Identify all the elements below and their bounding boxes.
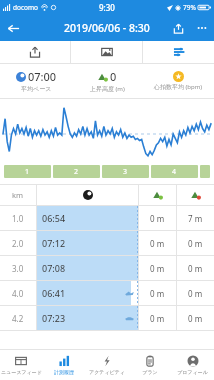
button[interactable]: 心拍数平均 (bpm) xyxy=(143,64,214,98)
button[interactable]: 計測履歴 xyxy=(42,350,85,380)
button[interactable]: 2.0 xyxy=(0,231,214,255)
staticText: 2019/06/06 - 8:30 xyxy=(64,21,150,35)
staticText: 1 xyxy=(25,167,30,177)
button[interactable]: 3.0 xyxy=(0,256,214,280)
staticText: 0 m xyxy=(188,288,203,299)
button[interactable]: Splits xyxy=(143,41,214,63)
staticText: 1.0 xyxy=(12,213,24,224)
button[interactable]: 1.0 xyxy=(0,206,214,230)
staticText: 9:30 xyxy=(99,2,115,13)
staticText: 0 m xyxy=(150,313,165,324)
staticText: 平均ペース xyxy=(21,85,52,93)
button[interactable]: Export xyxy=(0,41,70,63)
staticText: 07:00 xyxy=(28,69,57,84)
button[interactable]: 07:00 xyxy=(0,64,72,98)
staticText: 7 m xyxy=(188,213,203,224)
staticText: ニュースフィード xyxy=(1,369,42,375)
staticText: 0 m xyxy=(188,313,203,324)
staticText: 07:12 xyxy=(42,237,66,249)
button[interactable]: ニュースフィード xyxy=(0,350,42,380)
staticText: 0 m xyxy=(188,263,203,274)
staticText: 07:23 xyxy=(42,312,66,324)
staticText: プラン xyxy=(142,369,158,375)
staticText: アクティビティ xyxy=(89,369,125,375)
staticText: 2.0 xyxy=(12,238,24,249)
staticText: 06:41 xyxy=(42,287,66,299)
staticText: 07:08 xyxy=(42,262,66,274)
staticText: 4 xyxy=(172,167,177,177)
staticText: 0 m xyxy=(150,213,165,224)
staticText: 2 xyxy=(74,167,79,177)
staticText: 0 m xyxy=(188,238,203,249)
staticText: 0 m xyxy=(150,263,165,274)
staticText: 0 m xyxy=(150,288,165,299)
staticText: km xyxy=(12,190,24,200)
button[interactable]: Share xyxy=(166,16,190,40)
button[interactable]: Back xyxy=(0,15,26,41)
staticText: 心拍数平均 (bpm) xyxy=(154,83,203,91)
staticText: 79% xyxy=(183,3,196,12)
button[interactable]: Map xyxy=(71,41,142,63)
button[interactable]: 4.0 xyxy=(0,281,214,305)
button[interactable]: プラン xyxy=(128,350,171,380)
button[interactable]: アクティビティ xyxy=(85,350,128,380)
staticText: 0 xyxy=(110,69,117,84)
staticText: 上昇高度 (m) xyxy=(90,85,125,93)
staticText: 06:54 xyxy=(42,212,66,224)
staticText: 3.0 xyxy=(12,263,24,274)
button[interactable]: 0 xyxy=(72,64,143,98)
button[interactable]: 4.2 xyxy=(0,306,214,330)
staticText: docomo xyxy=(13,3,38,12)
staticText: 計測履歴 xyxy=(54,369,74,375)
button[interactable]: プロフィール xyxy=(171,350,214,380)
staticText: 4.0 xyxy=(12,288,24,299)
staticText: 0 m xyxy=(150,238,165,249)
button[interactable]: More options xyxy=(190,16,214,40)
staticText: 3 xyxy=(123,167,128,177)
staticText: 4.2 xyxy=(12,313,24,324)
staticText: プロフィール xyxy=(177,369,208,375)
